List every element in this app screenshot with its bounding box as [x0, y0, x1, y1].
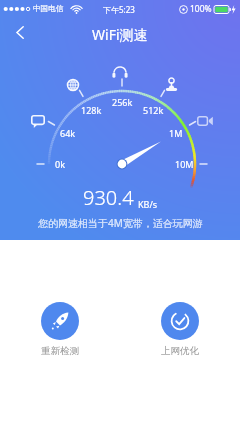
staticText: 上网优化 — [161, 345, 199, 357]
staticText: 下午5:23 — [103, 4, 135, 15]
staticText: 中国电信 — [33, 4, 64, 14]
staticText: 64k — [60, 127, 76, 139]
staticText: 1M — [169, 127, 183, 139]
staticText: 256k — [112, 96, 133, 108]
staticText: KB/s — [138, 198, 158, 210]
staticText: 100% — [190, 3, 212, 15]
staticText: 重新检测 — [41, 345, 79, 357]
staticText: WiFi测速 — [92, 25, 148, 44]
staticText: 930.4 — [83, 184, 134, 211]
staticText: 10M — [175, 158, 194, 170]
staticText: 您的网速相当于4M宽带，适合玩网游 — [38, 216, 203, 230]
button[interactable]: Back — [4, 16, 36, 48]
staticText: 512k — [143, 104, 164, 116]
staticText: 0k — [55, 158, 65, 170]
staticText: 128k — [81, 104, 102, 116]
button[interactable]: 重新检测 — [31, 298, 89, 361]
button[interactable]: 上网优化 — [151, 298, 209, 361]
